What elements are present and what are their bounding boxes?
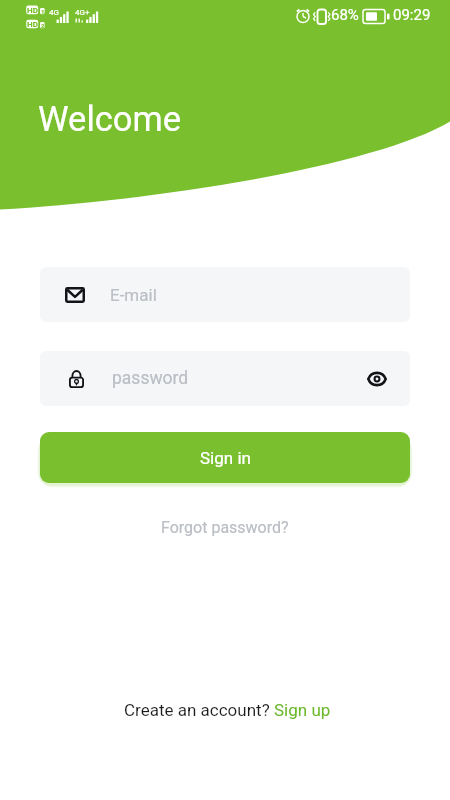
staticText: E-mail (110, 285, 157, 305)
staticText: Create an account? (124, 700, 274, 720)
button[interactable]: E-mail (40, 267, 410, 322)
staticText: Welcome (38, 99, 182, 139)
button[interactable]: password (40, 351, 410, 406)
button[interactable]: Forgot password? (147, 510, 303, 545)
staticText: password (112, 368, 189, 389)
staticText: HD (27, 20, 38, 29)
staticText: 2 (41, 22, 45, 29)
button[interactable]: Sign in (40, 432, 410, 483)
staticText: Sign in (200, 448, 251, 468)
staticText: 4G (49, 8, 59, 17)
staticText: 1 (41, 8, 45, 15)
button[interactable]: Sign up (274, 700, 331, 720)
staticText: 09:29 (393, 6, 431, 24)
staticText: 68% (331, 6, 359, 24)
staticText: Sign up (274, 700, 331, 720)
staticText: HD (27, 6, 38, 15)
button[interactable]: Show password (355, 357, 399, 401)
staticText: 4G+ (75, 8, 90, 17)
staticText: Forgot password? (161, 518, 289, 537)
